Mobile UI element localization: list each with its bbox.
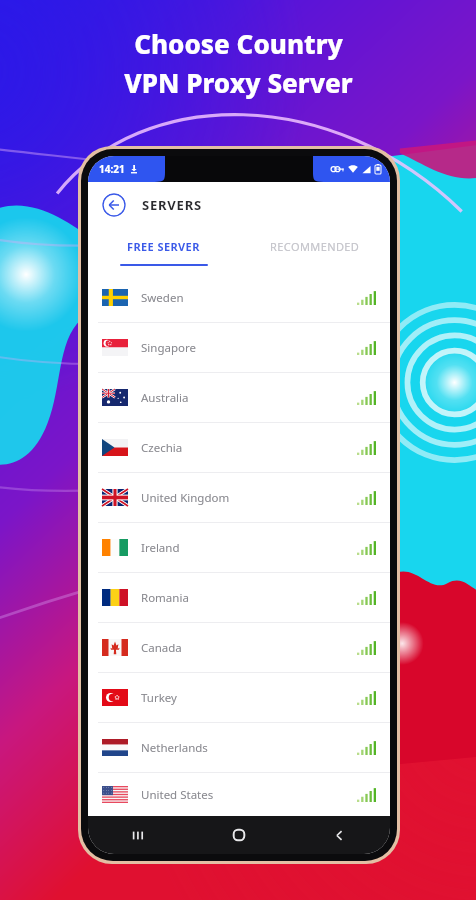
staticText: Sweden <box>141 290 184 306</box>
staticText: RECOMMENDED <box>270 239 360 254</box>
button[interactable]: United Kingdom <box>88 473 390 522</box>
staticText: Ireland <box>141 540 180 556</box>
button[interactable]: Home <box>188 816 289 854</box>
staticText: Australia <box>141 390 189 406</box>
button[interactable]: FREE SERVER <box>88 228 239 264</box>
staticText: United States <box>141 787 214 803</box>
button[interactable]: Recents <box>88 816 188 854</box>
staticText: VPN Proxy Server <box>124 65 353 100</box>
button[interactable]: Back <box>102 193 126 217</box>
staticText: 14:21 <box>99 162 125 176</box>
staticText: SERVERS <box>142 196 202 214</box>
staticText: Choose Country <box>134 26 343 61</box>
staticText: Canada <box>141 640 182 656</box>
button[interactable]: Romania <box>88 573 390 622</box>
staticText: FREE SERVER <box>127 239 200 254</box>
staticText: Romania <box>141 590 189 606</box>
button[interactable]: United States <box>88 773 390 816</box>
button[interactable]: Turkey <box>88 673 390 722</box>
button[interactable]: Singapore <box>88 323 390 372</box>
button[interactable]: Australia <box>88 373 390 422</box>
staticText: Czechia <box>141 440 183 456</box>
staticText: Netherlands <box>141 740 208 756</box>
button[interactable]: Sweden <box>88 273 390 322</box>
staticText: Turkey <box>141 690 177 706</box>
button[interactable]: Ireland <box>88 523 390 572</box>
button[interactable]: Czechia <box>88 423 390 472</box>
button[interactable]: Canada <box>88 623 390 672</box>
staticText: United Kingdom <box>141 490 230 506</box>
button[interactable]: Netherlands <box>88 723 390 772</box>
button[interactable]: RECOMMENDED <box>239 228 390 264</box>
staticText: Singapore <box>141 340 196 356</box>
button[interactable]: Back <box>289 816 390 854</box>
